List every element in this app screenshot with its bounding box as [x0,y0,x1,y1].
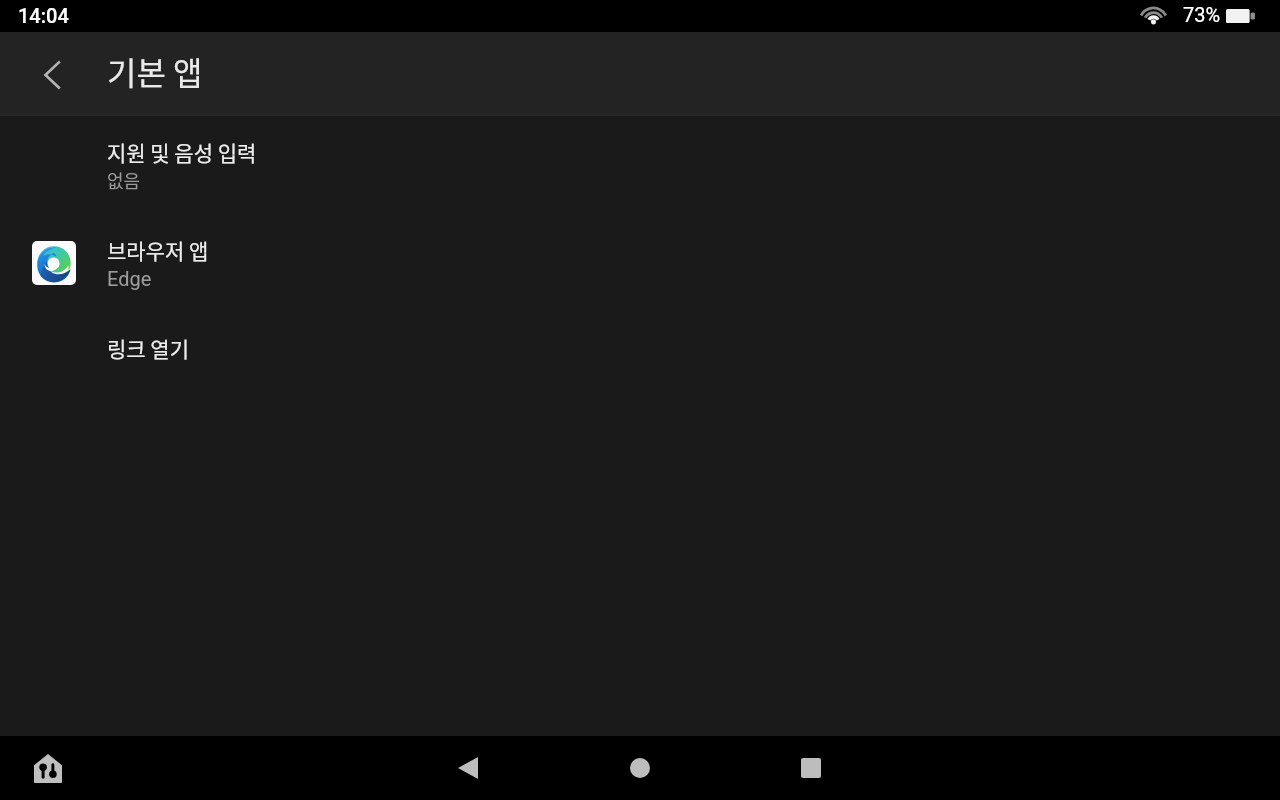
staticText: 73% [1183,3,1221,26]
other: Battery 73 percent [1226,9,1255,23]
other: Wi-Fi signal [1138,1,1169,25]
staticText: 14:04 [18,4,69,27]
button[interactable]: 지원 및 음성 입력 [0,116,1280,214]
staticText: 지원 및 음성 입력 [107,137,257,167]
button[interactable]: Home [600,736,680,800]
staticText: 브라우저 앱 [107,235,209,265]
button[interactable]: 링크 열기 [0,312,1280,410]
staticText: 없음 [107,167,141,193]
staticText: 기본 앱 [107,48,203,94]
button[interactable]: Back [22,44,82,104]
button[interactable]: Recent apps [771,736,851,800]
button[interactable]: Home settings [24,744,72,792]
staticText: 링크 열기 [107,333,189,363]
button[interactable]: Back [428,736,508,800]
staticText: Edge [107,267,152,290]
button[interactable]: 브라우저 앱 [0,214,1280,312]
